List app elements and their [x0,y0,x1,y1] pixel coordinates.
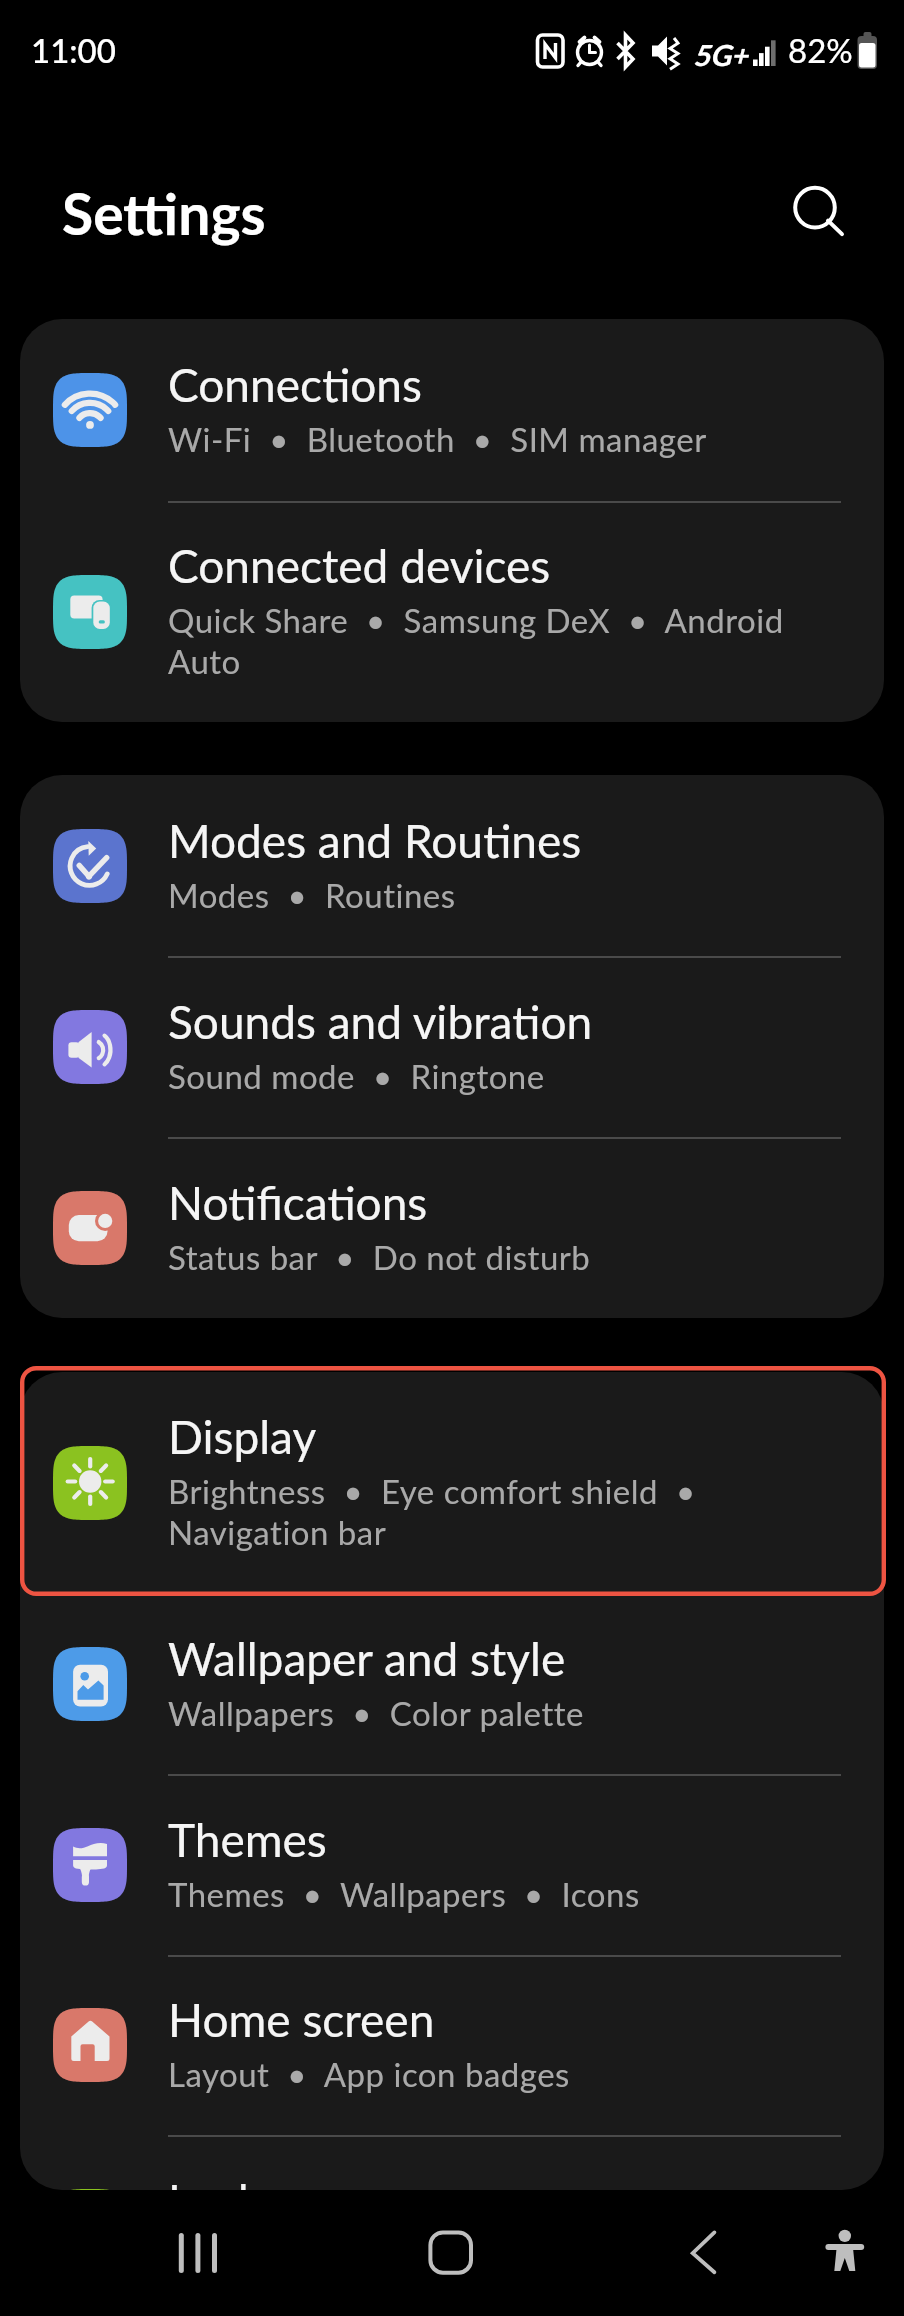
staticText: Status bar • Do not disturb [168,1237,824,1277]
button[interactable]: Home screen [20,1955,884,2135]
staticText: Sound mode • Ringtone [168,1056,824,1096]
staticText: 11:00 [31,30,116,70]
button[interactable]: Wallpaper and style [20,1594,884,1774]
staticText: Wallpaper and style [168,1631,824,1686]
staticText: Modes • Routines [168,875,824,915]
staticText: Settings [62,179,266,247]
staticText: Notifications [168,1175,824,1230]
button[interactable]: Lock screen [20,2135,884,2190]
staticText: Connections [168,357,824,412]
button[interactable]: Notifications [20,1137,884,1318]
staticText: Display [168,1409,824,1464]
staticText: Themes • Wallpapers • Icons [168,1874,824,1914]
staticText: Brightness • Eye comfort shield • Naviga… [168,1471,824,1552]
other: Display highlighted [20,1366,886,1596]
button[interactable]: Connections [20,319,884,501]
staticText: Sounds and vibration [168,994,824,1049]
button[interactable]: Accessibility [795,2203,895,2303]
staticText: 5G+ [693,37,748,72]
staticText: Quick Share • Samsung DeX • Android Auto [168,600,824,681]
button[interactable]: Search [771,163,859,251]
button[interactable]: Connected devices [20,501,884,722]
staticText: Modes and Routines [168,813,824,868]
button[interactable]: Themes [20,1774,884,1955]
staticText: Layout • App icon badges [168,2054,824,2094]
button[interactable]: Display [20,1372,884,1594]
staticText: Themes [168,1812,824,1867]
button[interactable]: Modes and Routines [20,775,884,956]
staticText: 82% [788,30,853,70]
staticText: Home screen [168,1992,824,2047]
button[interactable]: Sounds and vibration [20,956,884,1137]
staticText: Wi-Fi • Bluetooth • SIM manager [168,419,824,459]
button[interactable]: Back [654,2203,754,2303]
button[interactable]: Home [401,2203,501,2303]
button[interactable]: Recent apps [148,2203,248,2303]
staticText: Connected devices [168,538,824,593]
staticText: Wallpapers • Color palette [168,1693,824,1733]
staticText: Lock screen [168,2173,824,2190]
